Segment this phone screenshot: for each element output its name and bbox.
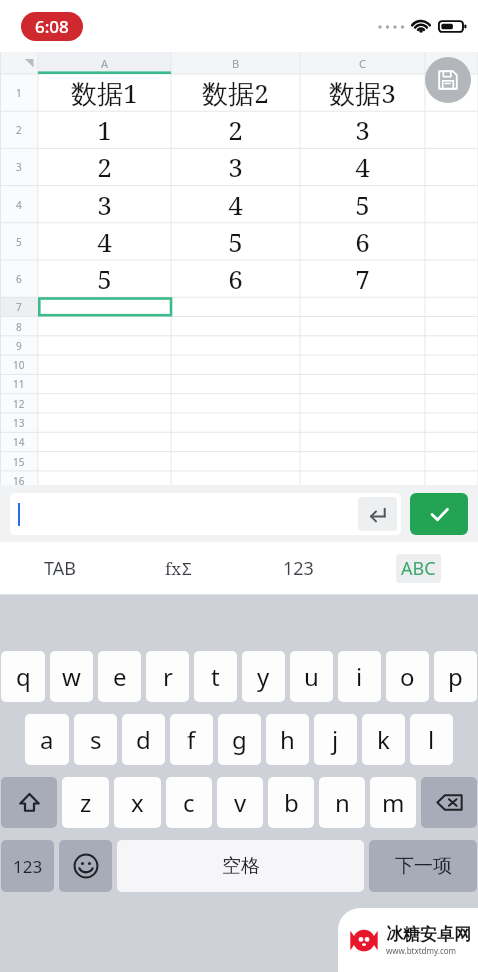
staticText: D bbox=[447, 56, 456, 71]
staticText: 2 bbox=[97, 149, 112, 184]
staticText: 冰糖安卓网 bbox=[386, 924, 471, 945]
staticText: 18 bbox=[13, 512, 25, 526]
button[interactable]: A bbox=[38, 52, 171, 74]
button[interactable]: j bbox=[314, 714, 357, 765]
staticText: 数据3 bbox=[329, 75, 396, 111]
button[interactable]: z bbox=[62, 777, 109, 828]
button[interactable]: Emoji bbox=[59, 840, 112, 892]
staticText: s bbox=[90, 723, 102, 756]
button[interactable]: 2 bbox=[38, 148, 171, 185]
staticText: c bbox=[183, 786, 195, 819]
button[interactable]: f bbox=[170, 714, 213, 765]
staticText: 16 bbox=[13, 474, 25, 488]
staticText: 3 bbox=[355, 112, 370, 147]
button[interactable]: Shift bbox=[1, 777, 57, 828]
button[interactable]: g bbox=[218, 714, 261, 765]
button[interactable]: u bbox=[290, 651, 333, 702]
button[interactable]: 6 bbox=[171, 260, 300, 297]
button[interactable]: r bbox=[146, 651, 189, 702]
button[interactable]: c bbox=[166, 777, 212, 828]
button[interactable]: 4 bbox=[171, 186, 300, 223]
staticText: r bbox=[163, 660, 173, 693]
staticText: 6 bbox=[228, 261, 243, 296]
staticText: 4 bbox=[228, 187, 243, 222]
staticText: 4 bbox=[97, 224, 112, 259]
staticText: 15 bbox=[13, 455, 25, 469]
button[interactable]: ABC bbox=[358, 542, 478, 595]
button[interactable]: Save bbox=[425, 57, 471, 103]
button[interactable]: New line bbox=[358, 497, 397, 531]
staticText: 12 bbox=[13, 397, 25, 411]
staticText: 7 bbox=[16, 300, 22, 314]
button[interactable]: 数据2 bbox=[171, 74, 300, 111]
button[interactable]: b bbox=[268, 777, 314, 828]
staticText: 7 bbox=[355, 261, 370, 296]
button[interactable]: t bbox=[194, 651, 237, 702]
button[interactable]: B bbox=[171, 52, 300, 74]
button[interactable]: s bbox=[74, 714, 117, 765]
staticText: 5 bbox=[228, 224, 243, 259]
button[interactable]: TAB bbox=[0, 542, 119, 595]
button[interactable]: Confirm bbox=[410, 493, 468, 535]
button[interactable]: q bbox=[1, 651, 45, 702]
button[interactable]: 数据1 bbox=[38, 74, 171, 111]
button[interactable]: D bbox=[425, 52, 478, 74]
button[interactable]: 6 bbox=[300, 223, 425, 260]
button[interactable]: 123 bbox=[1, 840, 54, 892]
staticText: 5 bbox=[16, 235, 22, 249]
button[interactable]: 空格 bbox=[117, 840, 364, 892]
button[interactable]: v bbox=[217, 777, 263, 828]
button[interactable]: Backspace bbox=[421, 777, 477, 828]
button[interactable]: p bbox=[434, 651, 477, 702]
button[interactable]: 4 bbox=[38, 223, 171, 260]
staticText: 6 bbox=[355, 224, 370, 259]
button[interactable]: 3 bbox=[300, 111, 425, 148]
button[interactable]: x bbox=[114, 777, 161, 828]
button[interactable]: e bbox=[98, 651, 141, 702]
staticText: j bbox=[332, 723, 339, 756]
staticText: 数据2 bbox=[202, 75, 269, 111]
button[interactable]: l bbox=[410, 714, 453, 765]
button[interactable]: y bbox=[242, 651, 285, 702]
button[interactable]: i bbox=[338, 651, 381, 702]
staticText: 3 bbox=[228, 149, 243, 184]
staticText: h bbox=[280, 723, 295, 756]
staticText: 14 bbox=[13, 435, 25, 449]
button[interactable]: New line bbox=[10, 493, 401, 535]
staticText: 下一项 bbox=[395, 854, 452, 878]
button[interactable]: n bbox=[319, 777, 365, 828]
button[interactable]: a bbox=[25, 714, 69, 765]
button[interactable]: d bbox=[122, 714, 165, 765]
button[interactable]: 5 bbox=[300, 186, 425, 223]
button[interactable]: 5 bbox=[171, 223, 300, 260]
staticText: p bbox=[448, 660, 463, 693]
button[interactable]: 4 bbox=[300, 148, 425, 185]
staticText: 123 bbox=[13, 855, 43, 878]
button[interactable]: k bbox=[362, 714, 405, 765]
button[interactable]: w bbox=[50, 651, 93, 702]
staticText: 8 bbox=[16, 320, 22, 334]
button[interactable]: 下一项 bbox=[369, 840, 477, 892]
staticText: t bbox=[211, 660, 220, 693]
button[interactable]: 1 bbox=[38, 111, 171, 148]
button[interactable]: 3 bbox=[171, 148, 300, 185]
staticText: 1 bbox=[97, 112, 112, 147]
button[interactable]: 2 bbox=[171, 111, 300, 148]
staticText: d bbox=[136, 723, 151, 756]
button[interactable]: o bbox=[386, 651, 429, 702]
button[interactable]: fx bbox=[119, 542, 238, 595]
button[interactable]: 数据3 bbox=[300, 74, 425, 111]
button[interactable]: h bbox=[266, 714, 309, 765]
button[interactable]: 123 bbox=[238, 542, 358, 595]
button[interactable]: C bbox=[300, 52, 425, 74]
button[interactable]: 6:08 bbox=[21, 12, 83, 41]
staticText: Σ bbox=[182, 557, 192, 580]
staticText: 6 bbox=[16, 272, 22, 286]
staticText: 4 bbox=[355, 149, 370, 184]
button[interactable]: m bbox=[370, 777, 416, 828]
staticText: 数据1 bbox=[71, 75, 138, 111]
button[interactable]: 3 bbox=[38, 186, 171, 223]
button[interactable]: 7 bbox=[300, 260, 425, 297]
button[interactable]: 5 bbox=[38, 260, 171, 297]
staticText: 9 bbox=[16, 339, 22, 353]
